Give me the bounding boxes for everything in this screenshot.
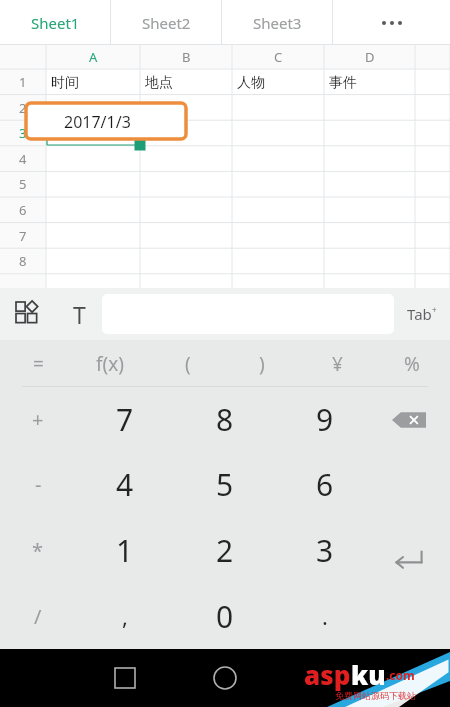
button[interactable]: 1	[0, 69, 46, 95]
button[interactable]: 2	[183, 517, 267, 583]
button[interactable]: 5	[183, 452, 267, 517]
staticText: 5	[216, 464, 234, 505]
staticText: =	[33, 351, 44, 377]
button[interactable]: (	[152, 340, 224, 387]
button[interactable]: C	[232, 45, 324, 69]
staticText: 5	[19, 175, 27, 193]
button[interactable]: .	[283, 583, 367, 649]
button[interactable]: *	[0, 517, 80, 583]
staticText: +	[432, 304, 437, 315]
staticText: 免费网站源码下载站	[335, 690, 416, 701]
staticText: T	[73, 299, 86, 330]
button[interactable]: Text input	[56, 288, 102, 340]
button[interactable]: 7	[83, 387, 167, 452]
staticText: 7	[116, 399, 134, 440]
staticText: 人物	[237, 74, 265, 92]
staticText: 3	[19, 124, 27, 142]
button[interactable]: /	[0, 583, 80, 649]
staticText: ,	[122, 601, 128, 631]
staticText: 8	[216, 399, 234, 440]
button[interactable]: 4	[83, 452, 167, 517]
button[interactable]: 0	[183, 583, 267, 649]
staticText: -	[35, 471, 42, 498]
button[interactable]: Enter	[386, 537, 432, 583]
staticText: D	[365, 48, 375, 66]
button[interactable]: More options	[333, 0, 450, 45]
button[interactable]: Recents	[100, 649, 150, 707]
staticText: B	[182, 48, 191, 66]
staticText: 2	[19, 99, 27, 117]
button[interactable]: =	[2, 340, 74, 387]
staticText: 1	[19, 73, 27, 91]
staticText: *	[32, 537, 44, 564]
staticText: 0	[216, 596, 234, 637]
staticText: Sheet3	[253, 13, 302, 33]
button[interactable]: 7	[0, 223, 46, 249]
staticText: Tab	[407, 304, 432, 324]
button[interactable]: 8	[0, 248, 46, 274]
staticText: f(x)	[96, 351, 124, 377]
button[interactable]: Home	[200, 649, 250, 707]
button[interactable]: 6	[0, 197, 46, 223]
staticText: /	[34, 603, 42, 630]
staticText: 事件	[329, 74, 357, 92]
staticText: asp	[304, 657, 351, 692]
button[interactable]: D	[324, 45, 415, 69]
button[interactable]: B	[140, 45, 232, 69]
staticText: ku	[351, 657, 386, 692]
button[interactable]: 1	[83, 517, 167, 583]
staticText: ¥	[332, 351, 343, 377]
staticText: 时间	[51, 74, 79, 92]
staticText: 1	[116, 530, 134, 571]
staticText: 6	[316, 464, 334, 505]
staticText: 7	[19, 227, 27, 245]
button[interactable]: 9	[283, 387, 367, 452]
button[interactable]: %	[376, 340, 448, 387]
button[interactable]: ,	[83, 583, 167, 649]
button[interactable]: )	[226, 340, 298, 387]
staticText: +	[32, 406, 44, 433]
staticText: .	[322, 601, 328, 631]
button[interactable]: 4	[0, 146, 46, 172]
staticText: 3	[316, 530, 334, 571]
staticText: C	[274, 48, 283, 66]
button[interactable]: 3	[283, 517, 367, 583]
button[interactable]: Sheet2	[111, 0, 221, 45]
button[interactable]: Sheet3	[222, 0, 332, 45]
staticText: (	[185, 351, 191, 377]
staticText: 9	[316, 399, 334, 440]
button[interactable]: 3	[0, 120, 46, 146]
staticText: 2	[216, 530, 234, 571]
staticText: 2017/1/3	[64, 111, 131, 133]
button[interactable]: 5	[0, 171, 46, 197]
staticText: 8	[19, 252, 27, 270]
staticText: )	[259, 351, 265, 377]
staticText: Sheet2	[142, 13, 191, 33]
button[interactable]: ¥	[301, 340, 373, 387]
button[interactable]: 2	[0, 95, 46, 121]
button[interactable]: f(x)	[74, 340, 146, 387]
button[interactable]	[26, 103, 186, 139]
staticText: .com	[386, 667, 415, 683]
button[interactable]: 8	[183, 387, 267, 452]
staticText: Sheet1	[31, 13, 80, 33]
button[interactable]: 6	[283, 452, 367, 517]
staticText: %	[404, 351, 420, 377]
staticText: 地点	[145, 74, 173, 92]
staticText: A	[89, 48, 98, 66]
button[interactable]: Cell format	[0, 288, 56, 340]
button[interactable]: +	[0, 387, 80, 452]
button[interactable]: Sheet1	[0, 0, 110, 45]
staticText: 4	[19, 150, 27, 168]
button[interactable]: Tab	[394, 288, 450, 340]
button[interactable]: Backspace	[386, 397, 432, 443]
staticText: 4	[116, 464, 134, 505]
staticText: 6	[19, 201, 27, 219]
button[interactable]: A	[46, 45, 140, 69]
